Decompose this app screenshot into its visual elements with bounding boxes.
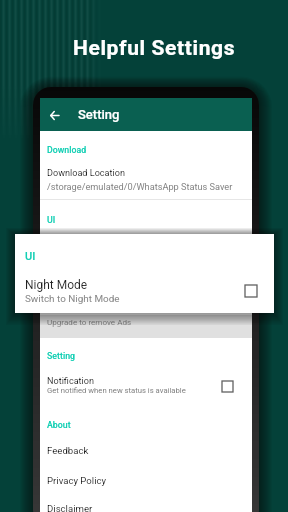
staticText: Setting [47, 351, 76, 361]
button[interactable]: Night Mode toggle [245, 285, 257, 297]
button[interactable]: Theme [40, 274, 252, 302]
button[interactable]: Back [44, 105, 64, 125]
staticText: Privacy Policy [47, 475, 107, 486]
staticText: UI [47, 215, 56, 225]
button[interactable]: Privacy Policy [40, 469, 252, 491]
staticText: /storage/emulated/0/WhatsApp Status Save… [47, 181, 233, 192]
button[interactable]: Feedback [40, 439, 252, 461]
button[interactable]: Notification checkbox [222, 381, 233, 392]
staticText: Switch to Night Mode [25, 293, 120, 305]
staticText: Feedback [47, 445, 89, 456]
staticText: Theme [47, 278, 76, 289]
staticText: Helpful Settings [73, 36, 236, 61]
staticText: Download Location [47, 168, 125, 179]
staticText: Setting [78, 107, 120, 122]
staticText: Get notified when new status is availabl… [47, 386, 186, 395]
staticText: Upgrade to remove Ads [47, 317, 132, 326]
button[interactable]: Remove Ads [40, 293, 252, 329]
staticText: Download [47, 145, 87, 155]
staticText: Remove Ads [47, 300, 98, 311]
staticText: Night Mode [25, 278, 88, 292]
button[interactable]: Night Mode [25, 276, 257, 306]
staticText: Choose application theme [47, 291, 137, 300]
button[interactable]: Download Location [40, 165, 252, 193]
staticText: About [47, 420, 71, 430]
staticText: Disclaimer [47, 503, 93, 512]
staticText: UI [25, 250, 36, 263]
staticText: Notification [47, 376, 95, 387]
button[interactable]: Disclaimer [40, 497, 252, 512]
button[interactable]: Notification [40, 372, 252, 400]
